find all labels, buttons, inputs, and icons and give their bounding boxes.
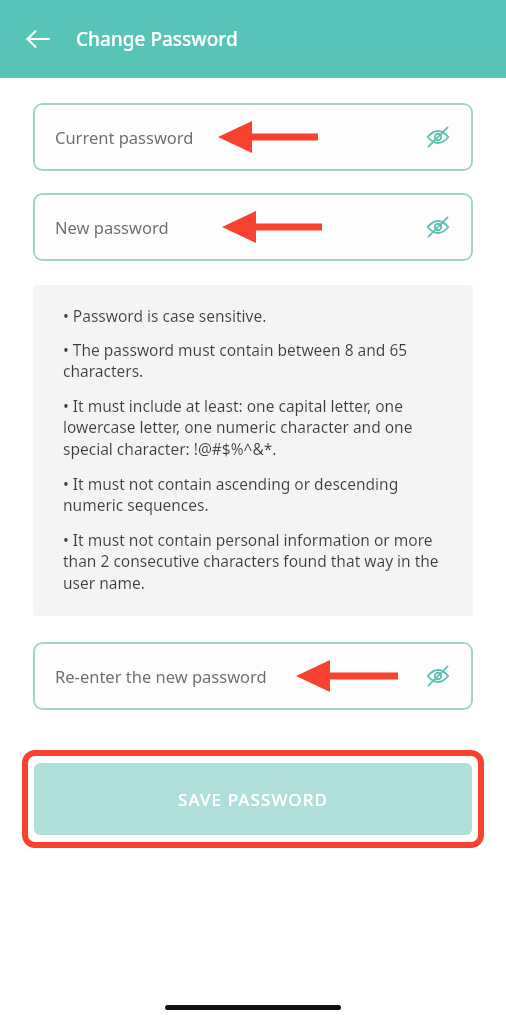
button[interactable]: Show password (417, 206, 459, 248)
staticText: • It must not contain ascending or desce… (63, 473, 455, 516)
button[interactable]: SAVE PASSWORD (34, 763, 472, 835)
staticText: Change Password (76, 26, 238, 52)
staticText: • It must not contain personal informati… (63, 529, 455, 594)
staticText: • It must include at least: one capital … (63, 395, 455, 460)
button[interactable]: Show password (417, 655, 459, 697)
button[interactable]: Re-enter the new password (33, 642, 473, 710)
staticText: SAVE PASSWORD (178, 788, 329, 811)
staticText: New password (55, 216, 169, 238)
button[interactable]: Current password (33, 103, 473, 171)
staticText: Current password (55, 126, 194, 148)
button[interactable]: Show password (417, 116, 459, 158)
button[interactable]: Back (18, 19, 58, 59)
staticText: Re-enter the new password (55, 665, 267, 687)
button[interactable]: New password (33, 193, 473, 261)
staticText: • Password is case sensitive. (63, 305, 267, 326)
staticText: • The password must contain between 8 an… (63, 339, 455, 382)
